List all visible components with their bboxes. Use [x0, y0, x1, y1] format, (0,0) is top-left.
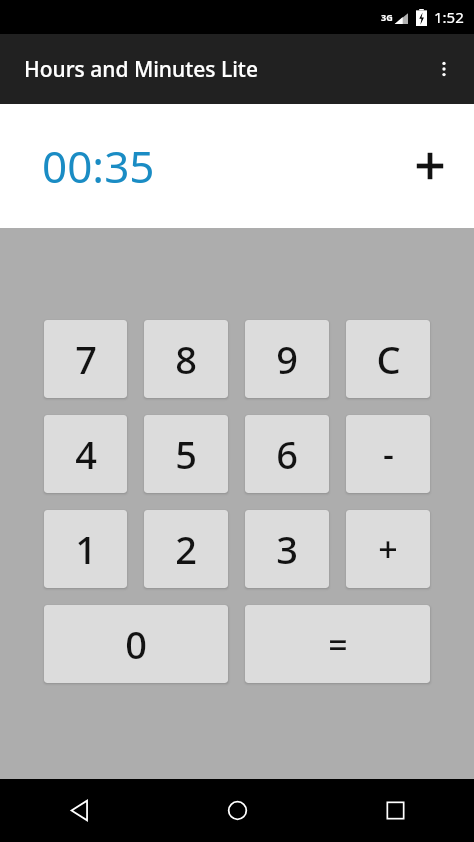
button[interactable]: 3: [245, 510, 329, 588]
staticText: 2: [175, 523, 197, 575]
button[interactable]: C: [346, 320, 430, 398]
button[interactable]: Recents: [316, 779, 474, 842]
button[interactable]: 9: [245, 320, 329, 398]
button[interactable]: Add: [404, 140, 456, 192]
button[interactable]: 8: [144, 320, 228, 398]
staticText: =: [328, 621, 348, 667]
button[interactable]: Back: [0, 779, 158, 842]
staticText: 3G: [381, 11, 393, 23]
staticText: 6: [276, 428, 298, 480]
staticText: C: [376, 333, 401, 385]
staticText: -: [383, 431, 394, 477]
button[interactable]: 7: [44, 320, 127, 398]
button[interactable]: =: [245, 605, 430, 683]
button[interactable]: 5: [144, 415, 228, 493]
button[interactable]: 1: [44, 510, 127, 588]
staticText: 1:52: [434, 7, 464, 27]
button[interactable]: -: [346, 415, 430, 493]
staticText: 4: [75, 428, 97, 480]
staticText: 7: [75, 333, 97, 385]
staticText: +: [378, 526, 398, 572]
button[interactable]: +: [346, 510, 430, 588]
button[interactable]: 6: [245, 415, 329, 493]
staticText: Hours and Minutes Lite: [24, 55, 258, 84]
staticText: 1: [75, 523, 97, 575]
staticText: 3: [276, 523, 298, 575]
button[interactable]: More options: [420, 45, 468, 93]
staticText: 0: [125, 618, 147, 670]
button[interactable]: Home: [158, 779, 316, 842]
staticText: 00:35: [42, 136, 155, 196]
button[interactable]: 4: [44, 415, 127, 493]
button[interactable]: 0: [44, 605, 228, 683]
staticText: 9: [276, 333, 298, 385]
staticText: 5: [175, 428, 197, 480]
staticText: 8: [175, 333, 197, 385]
button[interactable]: 2: [144, 510, 228, 588]
